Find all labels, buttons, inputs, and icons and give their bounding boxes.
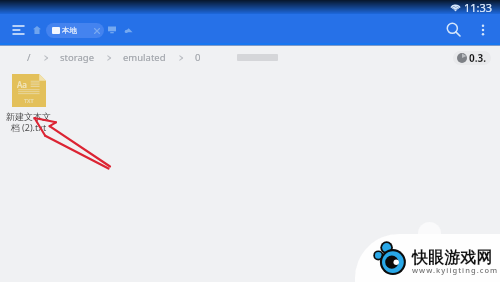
staticText: / [27,51,31,64]
staticText: www.kyiigting.com [412,265,499,275]
button[interactable]: 本地 [46,23,104,38]
button[interactable]: Aa [4,74,53,133]
staticText: storage [60,51,94,64]
button[interactable]: Menu [8,20,28,40]
button[interactable]: Network [104,22,120,38]
staticText: 本地 [62,26,77,35]
button[interactable]: More options [471,18,495,42]
button[interactable]: Home [30,23,44,37]
button[interactable]: Cloud [120,22,136,38]
staticText: TXT [24,97,34,104]
staticText: 0.3. [469,51,487,65]
staticText: 11:33 [464,0,493,14]
staticText: 快眼游戏网 [412,248,492,268]
staticText: emulated [123,51,166,64]
staticText: Aa [17,79,27,90]
button[interactable]: Add [418,222,441,245]
staticText: 0 [195,51,201,64]
button[interactable]: Search [441,17,467,43]
staticText: 新建文本文档 (2).txt [4,111,53,133]
button[interactable]: 0.3. [453,51,491,65]
